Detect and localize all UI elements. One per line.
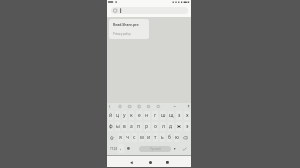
button[interactable]: е bbox=[136, 111, 142, 120]
staticText: Русский bbox=[150, 147, 161, 151]
button[interactable]: к bbox=[129, 111, 134, 120]
button[interactable]: з bbox=[176, 111, 182, 120]
staticText: х bbox=[186, 112, 189, 119]
button[interactable]: т bbox=[153, 133, 158, 142]
button[interactable]: г bbox=[152, 111, 158, 120]
staticText: я bbox=[119, 134, 122, 141]
button[interactable] bbox=[127, 158, 136, 167]
button[interactable] bbox=[111, 7, 188, 14]
button[interactable]: ф bbox=[108, 122, 113, 131]
button[interactable]: ж bbox=[176, 122, 182, 131]
staticText: е bbox=[138, 112, 141, 119]
button[interactable]: ы bbox=[115, 122, 120, 131]
button[interactable]: й bbox=[108, 111, 113, 120]
button[interactable]: м bbox=[139, 133, 144, 142]
staticText: ь bbox=[161, 134, 164, 141]
button[interactable]: ю bbox=[174, 133, 179, 142]
staticText: ф bbox=[109, 123, 113, 130]
staticText: ч bbox=[126, 134, 129, 141]
staticText: м bbox=[140, 134, 144, 141]
staticText: ?123 bbox=[110, 146, 118, 151]
staticText: с bbox=[133, 134, 136, 141]
staticText: Read.Share.pro bbox=[113, 22, 139, 27]
button[interactable] bbox=[125, 144, 132, 153]
staticText: о bbox=[154, 123, 157, 130]
button[interactable] bbox=[146, 158, 155, 167]
staticText: у bbox=[123, 112, 126, 119]
button[interactable]: э bbox=[184, 122, 190, 131]
button[interactable]: я bbox=[118, 133, 123, 142]
staticText: э bbox=[186, 123, 189, 130]
button[interactable]: ц bbox=[115, 111, 120, 120]
button[interactable]: и bbox=[146, 133, 151, 142]
staticText: а bbox=[130, 123, 133, 130]
staticText: ю bbox=[175, 134, 179, 141]
staticText: Privacy policy bbox=[113, 32, 131, 36]
button[interactable] bbox=[171, 144, 178, 153]
button[interactable]: у bbox=[122, 111, 127, 120]
button[interactable]: щ bbox=[168, 111, 174, 120]
button[interactable]: Русский bbox=[139, 146, 171, 152]
staticText: п bbox=[137, 123, 141, 130]
button[interactable]: ч bbox=[125, 133, 130, 142]
button[interactable]: о bbox=[152, 122, 158, 131]
staticText: щ bbox=[169, 112, 174, 119]
button[interactable]: р bbox=[144, 122, 150, 131]
staticText: , bbox=[120, 145, 122, 152]
button[interactable]: п bbox=[136, 122, 142, 131]
staticText: в bbox=[123, 123, 126, 130]
button[interactable] bbox=[107, 132, 117, 143]
staticText: ж bbox=[177, 123, 181, 130]
staticText: л bbox=[162, 123, 165, 130]
staticText: ы bbox=[116, 123, 120, 130]
button[interactable]: , bbox=[118, 144, 124, 153]
button[interactable]: н bbox=[144, 111, 150, 120]
staticText: ш bbox=[161, 112, 166, 119]
button[interactable]: в bbox=[122, 122, 127, 131]
staticText: н bbox=[145, 112, 149, 119]
staticText: з bbox=[178, 112, 181, 119]
staticText: д bbox=[169, 123, 173, 130]
button[interactable]: д bbox=[168, 122, 174, 131]
button[interactable] bbox=[180, 143, 189, 154]
staticText: г bbox=[154, 112, 157, 119]
button[interactable]: Read.Share.pro bbox=[109, 19, 149, 39]
button[interactable]: ь bbox=[160, 133, 165, 142]
button[interactable]: х bbox=[184, 111, 190, 120]
button[interactable]: с bbox=[132, 133, 137, 142]
button[interactable] bbox=[180, 132, 191, 143]
button[interactable]: а bbox=[129, 122, 134, 131]
staticText: и bbox=[147, 134, 151, 141]
staticText: й bbox=[109, 112, 113, 119]
button[interactable]: б bbox=[167, 133, 172, 142]
button[interactable] bbox=[163, 158, 172, 167]
staticText: р bbox=[145, 123, 149, 130]
button[interactable]: ?123 bbox=[109, 143, 118, 154]
button[interactable]: ш bbox=[160, 111, 166, 120]
staticText: ц bbox=[116, 112, 120, 119]
staticText: к bbox=[130, 112, 133, 119]
staticText: б bbox=[168, 134, 171, 141]
staticText: т bbox=[154, 134, 157, 141]
button[interactable]: л bbox=[160, 122, 166, 131]
